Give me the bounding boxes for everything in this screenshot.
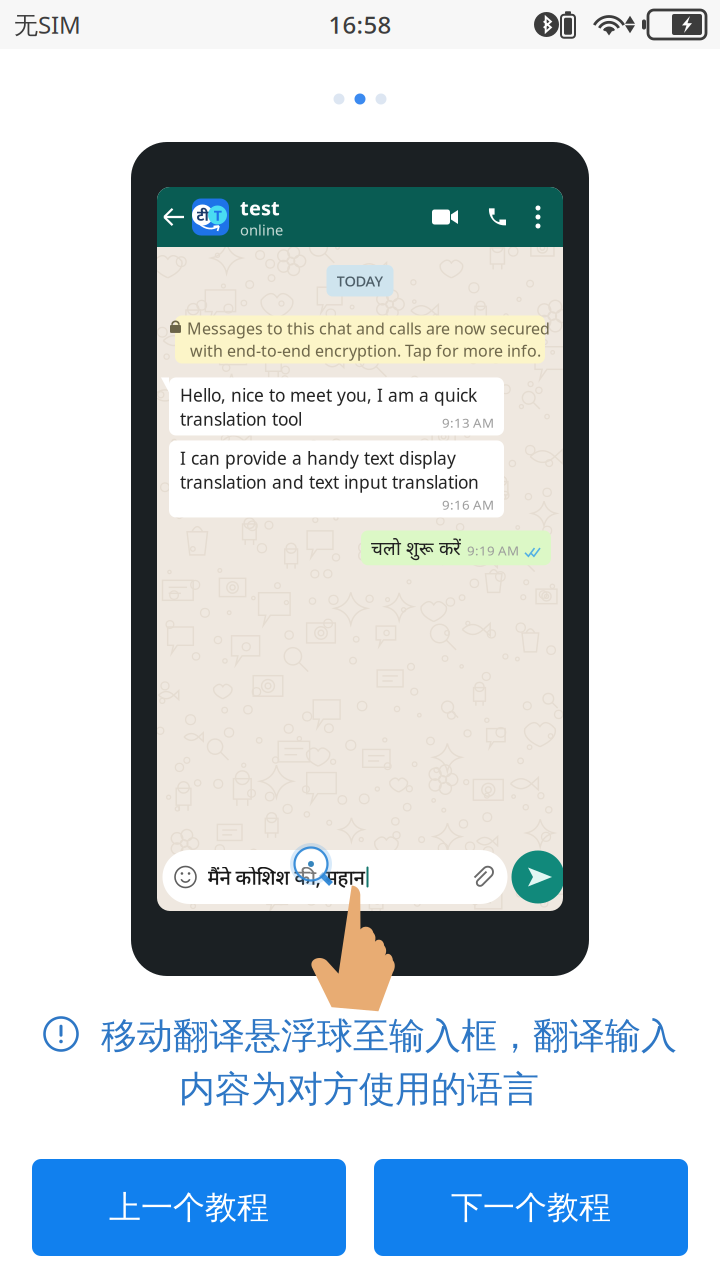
staticText: Messages to this chat and calls are now …	[187, 318, 550, 339]
staticText: चलो शुरू करें	[371, 535, 461, 560]
staticText: 9:19 AM	[467, 542, 519, 559]
button[interactable]: Back	[157, 187, 191, 247]
staticText: Hello, nice to meet you, I am a quick	[180, 383, 477, 406]
staticText: टी	[196, 205, 208, 225]
button[interactable]: Video call	[417, 187, 473, 247]
staticText: with end-to-end encryption. Tap for more…	[190, 340, 541, 361]
staticText: 9:13 AM	[442, 414, 494, 431]
staticText: 9:16 AM	[442, 496, 494, 513]
staticText: 上一个教程	[109, 1188, 269, 1227]
staticText: test	[240, 194, 280, 221]
staticText: TODAY	[336, 271, 383, 290]
staticText: मैंने कोशिश की, महान	[207, 864, 364, 890]
staticText: 移动翻译悬浮球至输入框，翻译输入	[101, 1014, 677, 1058]
button[interactable]: Voice call	[473, 187, 521, 247]
button[interactable]: 下一个教程	[374, 1159, 688, 1256]
staticText: 16:58	[328, 9, 391, 40]
staticText: 无SIM	[14, 9, 81, 40]
button[interactable]: More options	[521, 187, 555, 247]
staticText: I can provide a handy text display	[180, 446, 456, 469]
button[interactable]: 上一个教程	[32, 1159, 346, 1256]
staticText: translation tool	[180, 407, 302, 430]
staticText: 下一个教程	[451, 1188, 611, 1227]
staticText: T	[213, 205, 221, 225]
button[interactable]: Send	[511, 850, 564, 903]
staticText: 内容为对方使用的语言	[179, 1067, 539, 1111]
staticText: online	[240, 220, 283, 239]
staticText: translation and text input translation	[180, 470, 479, 493]
